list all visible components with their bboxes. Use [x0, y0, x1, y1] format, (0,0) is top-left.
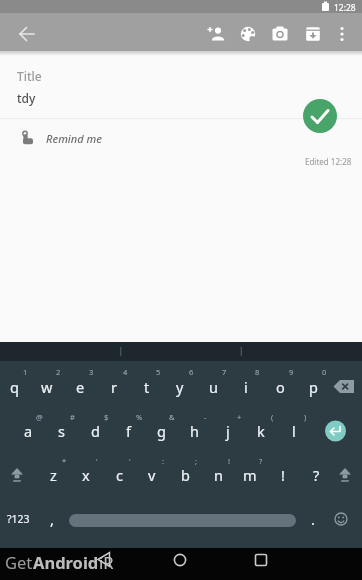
button[interactable]: y — [158, 374, 202, 400]
button[interactable]: q — [0, 374, 36, 400]
staticText: ' — [96, 456, 98, 466]
staticText: a — [24, 421, 33, 441]
button[interactable] — [296, 13, 328, 51]
staticText: x — [82, 465, 90, 485]
button[interactable]: b — [163, 462, 207, 488]
button[interactable]: k — [239, 418, 283, 444]
staticText: 7 — [222, 367, 227, 377]
button[interactable]: u — [191, 374, 235, 400]
staticText: ? — [313, 465, 320, 485]
button[interactable]: . — [291, 506, 335, 532]
button[interactable] — [303, 99, 337, 133]
staticText: 5 — [156, 367, 161, 377]
staticText: tdy — [17, 90, 36, 106]
staticText: d — [91, 421, 100, 441]
button[interactable] — [0, 13, 52, 51]
staticText: Remind me — [46, 131, 102, 146]
staticText: q — [10, 377, 19, 397]
button[interactable]: f — [106, 418, 150, 444]
staticText: 8 — [255, 367, 260, 377]
button[interactable]: z — [31, 462, 75, 488]
button[interactable]: m — [228, 462, 272, 488]
staticText: Edited 12:28 — [305, 156, 352, 167]
button[interactable]: s — [39, 418, 83, 444]
staticText: c — [116, 465, 123, 485]
staticText: 12:28 — [334, 2, 356, 14]
staticText: Title — [17, 68, 42, 84]
staticText: 4 — [123, 367, 128, 377]
staticText: u — [209, 377, 218, 397]
staticText: 9 — [289, 367, 294, 377]
staticText: . — [311, 509, 315, 529]
staticText: g — [157, 421, 166, 441]
button[interactable]: o — [258, 374, 302, 400]
staticText: ! — [228, 456, 231, 466]
button[interactable]: x — [64, 462, 108, 488]
button[interactable]: h — [172, 418, 216, 444]
staticText: 1 — [23, 367, 28, 377]
button[interactable]: i — [224, 374, 268, 400]
button[interactable]: , — [30, 506, 74, 532]
button[interactable]: ?123 — [0, 506, 40, 532]
button[interactable]: e — [58, 374, 102, 400]
staticText: ) — [304, 412, 307, 422]
staticText: Get — [5, 551, 33, 573]
staticText: n — [214, 465, 223, 485]
staticText: ! — [281, 465, 285, 485]
staticText: + — [237, 412, 242, 422]
staticText: s — [58, 421, 65, 441]
staticText: ? — [259, 456, 263, 466]
button[interactable]: p — [291, 374, 335, 400]
staticText: 2 — [56, 367, 61, 377]
staticText: % — [136, 412, 143, 422]
staticText: o — [276, 377, 285, 397]
button[interactable] — [246, 548, 276, 580]
staticText: t — [144, 377, 150, 397]
staticText: ?123 — [7, 512, 30, 526]
button[interactable]: d — [73, 418, 117, 444]
button[interactable]: j — [206, 418, 250, 444]
button[interactable] — [90, 548, 120, 580]
staticText: 0 — [322, 367, 327, 377]
staticText: b — [181, 465, 190, 485]
staticText: m — [243, 465, 257, 485]
button[interactable]: w — [25, 374, 69, 400]
staticText: , — [50, 509, 54, 529]
button[interactable]: r — [92, 374, 136, 400]
staticText: p — [309, 377, 318, 397]
button[interactable]: Remind me — [0, 126, 362, 150]
button[interactable] — [165, 548, 195, 580]
button[interactable]: n — [196, 462, 240, 488]
button[interactable]: g — [139, 418, 183, 444]
button[interactable]: ? — [294, 462, 338, 488]
staticText: e — [76, 377, 85, 397]
staticText: ' — [129, 456, 131, 466]
button[interactable] — [232, 13, 264, 51]
staticText: f — [126, 421, 131, 441]
staticText: & — [169, 412, 175, 422]
staticText: v — [148, 465, 156, 485]
staticText: r — [111, 377, 117, 397]
staticText: k — [257, 421, 265, 441]
button[interactable] — [199, 13, 231, 51]
staticText: iR — [99, 551, 114, 573]
staticText: * — [62, 456, 67, 466]
staticText: $ — [104, 412, 109, 422]
staticText: # — [70, 412, 75, 422]
button[interactable] — [264, 13, 296, 51]
button[interactable]: ! — [261, 462, 305, 488]
button[interactable] — [330, 13, 356, 51]
staticText: 3 — [89, 367, 94, 377]
staticText: w — [41, 377, 53, 397]
button[interactable]: t — [125, 374, 169, 400]
staticText: : — [162, 456, 165, 466]
button[interactable]: c — [97, 462, 141, 488]
staticText: h — [190, 421, 199, 441]
button[interactable]: a — [6, 418, 50, 444]
button[interactable]: v — [130, 462, 174, 488]
button[interactable] — [69, 514, 296, 527]
button[interactable]: l — [272, 418, 316, 444]
staticText: Android — [33, 551, 99, 573]
staticText: i — [244, 377, 248, 397]
staticText: ( — [271, 412, 274, 422]
